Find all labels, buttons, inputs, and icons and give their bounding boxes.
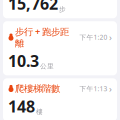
staticText: 公里 [40,62,54,70]
staticText: 樓 [36,108,43,116]
button[interactable]: 步行 + 跑步距離 [3,21,117,75]
staticText: 148 [8,96,35,117]
staticText: 下午1:13 [79,84,107,93]
staticText: 步 [59,5,66,13]
button[interactable]: 爬樓梯階數 [3,78,117,120]
staticText: › [109,31,112,43]
staticText: 下午1:20 [79,33,107,42]
staticText: 10.3 [8,50,39,71]
staticText: 步行 + 跑步距離 [15,25,69,49]
staticText: 爬樓梯階數 [15,83,60,94]
button[interactable]: 步行 [3,0,117,18]
staticText: 15,762 [8,0,58,14]
staticText: › [109,82,112,95]
